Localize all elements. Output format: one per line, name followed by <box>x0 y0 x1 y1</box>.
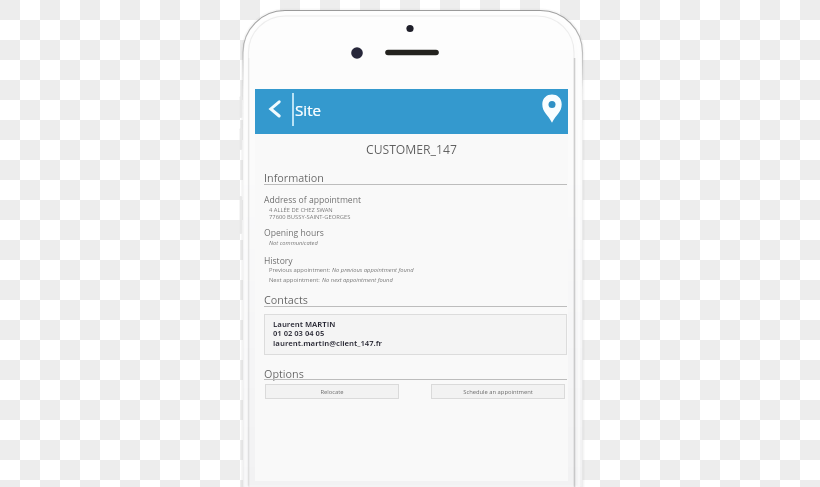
staticText: laurent.martin@client_147.fr <box>273 338 383 348</box>
button[interactable]: Laurent MARTIN <box>264 314 567 355</box>
staticText: 4 ALLÉE DE CHEZ SWAN <box>269 206 333 214</box>
staticText: 77600 BUSSY-SAINT-GEORGES <box>269 213 351 221</box>
staticText: Contacts <box>264 292 308 307</box>
staticText: CUSTOMER_147 <box>366 141 457 158</box>
staticText: Options <box>264 366 304 381</box>
staticText: History <box>264 255 293 267</box>
staticText: No next appointment found <box>322 276 393 284</box>
staticText: Next appointment: <box>269 276 322 284</box>
button[interactable]: Back <box>259 89 291 134</box>
staticText: Site <box>295 100 322 121</box>
staticText: 01 02 03 04 05 <box>273 328 325 338</box>
staticText: Relocate <box>320 388 344 396</box>
staticText: Opening hours <box>264 227 324 239</box>
staticText: No previous appointment found <box>332 266 414 274</box>
staticText: Not communicated <box>269 239 318 247</box>
staticText: Previous appointment: <box>269 266 332 274</box>
staticText: Address of appointment <box>264 194 362 206</box>
staticText: Schedule an appointment <box>463 388 533 396</box>
button[interactable]: Schedule an appointment <box>431 384 565 399</box>
button[interactable]: Show on map <box>536 89 568 134</box>
staticText: Information <box>264 170 324 185</box>
staticText: Laurent MARTIN <box>273 319 336 329</box>
button[interactable]: Relocate <box>265 384 399 399</box>
